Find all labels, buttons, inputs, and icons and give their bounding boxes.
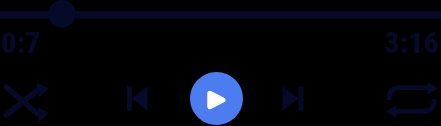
- button[interactable]: Play: [190, 72, 243, 125]
- button[interactable]: Repeat: [383, 80, 441, 118]
- button[interactable]: Next track: [280, 82, 308, 113]
- staticText: 0:7: [1, 25, 41, 60]
- button[interactable]: Shuffle: [0, 80, 52, 124]
- button[interactable]: Previous track: [123, 82, 151, 113]
- staticText: 3:16: [384, 25, 439, 60]
- button[interactable]: Seek position: [0, 0, 441, 30]
